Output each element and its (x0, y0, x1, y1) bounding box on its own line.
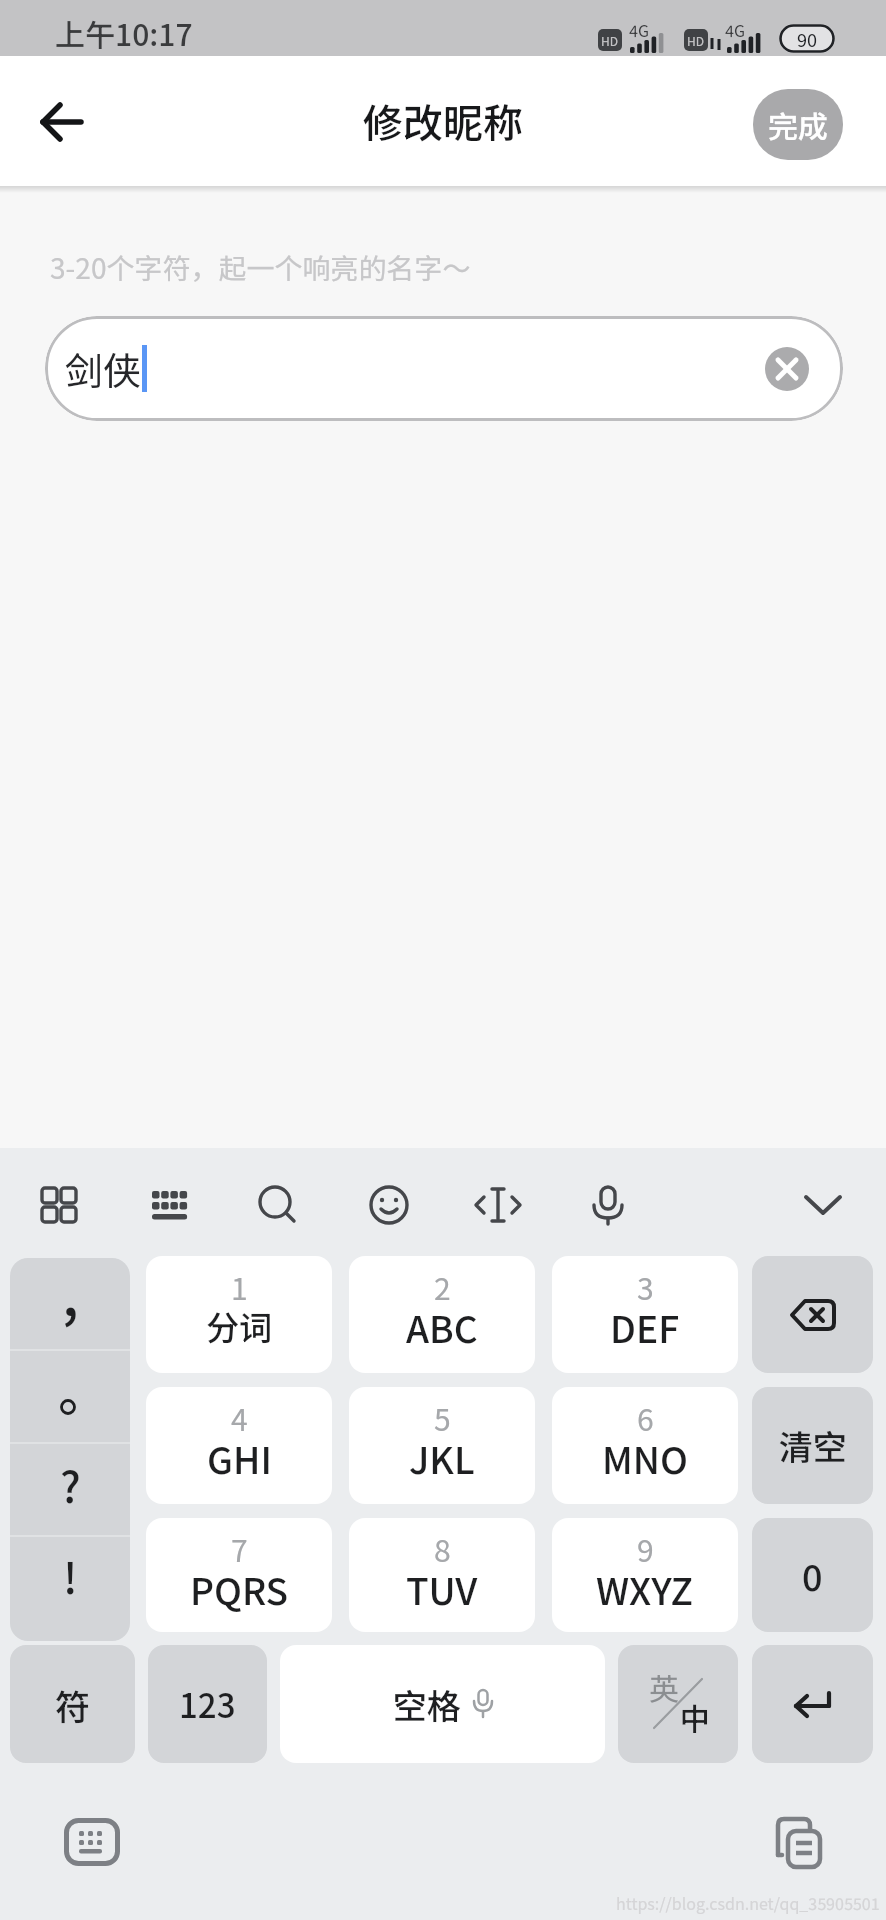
button[interactable] (353, 1159, 425, 1245)
button[interactable] (765, 347, 809, 391)
button[interactable]: 9 (552, 1518, 738, 1632)
button[interactable]: 0 (752, 1518, 873, 1632)
staticText: HD (601, 32, 619, 49)
button[interactable] (64, 1818, 120, 1866)
button[interactable] (787, 1159, 859, 1245)
button[interactable]: 剑侠 (45, 316, 843, 421)
button[interactable] (133, 1159, 205, 1245)
staticText: DEF (610, 1300, 680, 1354)
button[interactable]: 英 (618, 1645, 738, 1763)
button[interactable]: 3 (552, 1256, 738, 1373)
button[interactable]: 2 (349, 1256, 535, 1373)
button[interactable]: , (10, 1258, 130, 1641)
button[interactable] (462, 1159, 534, 1245)
staticText: 4G (629, 18, 649, 41)
staticText: 2 (434, 1265, 451, 1308)
staticText: https://blog.csdn.net/qq_35905501 (616, 1891, 880, 1914)
button[interactable] (752, 1645, 873, 1763)
button[interactable] (572, 1159, 644, 1245)
button[interactable]: 空格 (280, 1645, 605, 1763)
staticText: 4G (725, 18, 745, 41)
staticText: 清空 (779, 1421, 847, 1470)
button[interactable] (241, 1159, 313, 1245)
button[interactable]: 4 (146, 1387, 332, 1504)
button[interactable] (23, 1159, 95, 1245)
button[interactable]: 5 (349, 1387, 535, 1504)
staticText: 4 (231, 1396, 248, 1439)
staticText: 完成 (768, 103, 828, 146)
staticText: 6 (637, 1396, 654, 1439)
staticText: 9 (637, 1527, 654, 1570)
staticText: 分词 (206, 1302, 272, 1350)
staticText: ABC (406, 1300, 478, 1354)
staticText: 5 (434, 1396, 451, 1439)
button[interactable]: 完成 (753, 89, 843, 160)
staticText: PQRS (190, 1562, 289, 1616)
staticText: HD (687, 32, 705, 49)
button[interactable] (752, 1256, 873, 1373)
staticText: 123 (179, 1680, 236, 1728)
staticText: 剑侠 (65, 341, 142, 396)
button[interactable] (30, 90, 94, 154)
staticText: 修改昵称 (363, 92, 523, 150)
button[interactable]: 123 (148, 1645, 267, 1763)
staticText: ? (60, 1454, 81, 1515)
staticText: 中 (680, 1695, 710, 1738)
staticText: 0 (802, 1549, 823, 1601)
button[interactable] (766, 1815, 822, 1873)
button[interactable]: 符 (10, 1645, 135, 1763)
staticText: 3 (637, 1265, 654, 1308)
staticText: TUV (406, 1562, 478, 1616)
button[interactable]: 清空 (752, 1387, 873, 1504)
staticText: 符 (55, 1679, 91, 1730)
staticText: 上午10:17 (55, 11, 193, 54)
staticText: , (62, 1258, 79, 1332)
staticText: 3-20个字符，起一个响亮的名字～ (50, 247, 471, 288)
staticText: 90 (797, 26, 818, 52)
button[interactable]: 1 (146, 1256, 332, 1373)
staticText: 1 (231, 1265, 248, 1308)
staticText: GHI (207, 1431, 272, 1485)
staticText: 英 (649, 1665, 679, 1708)
button[interactable]: 8 (349, 1518, 535, 1632)
staticText: 空格 (393, 1680, 461, 1729)
staticText: 7 (231, 1527, 248, 1570)
staticText: JKL (409, 1431, 475, 1485)
staticText: WXYZ (596, 1562, 694, 1616)
button[interactable]: 6 (552, 1387, 738, 1504)
staticText: ! (63, 1545, 78, 1606)
staticText: 8 (434, 1527, 451, 1570)
button[interactable]: 7 (146, 1518, 332, 1632)
staticText: MNO (602, 1431, 688, 1485)
